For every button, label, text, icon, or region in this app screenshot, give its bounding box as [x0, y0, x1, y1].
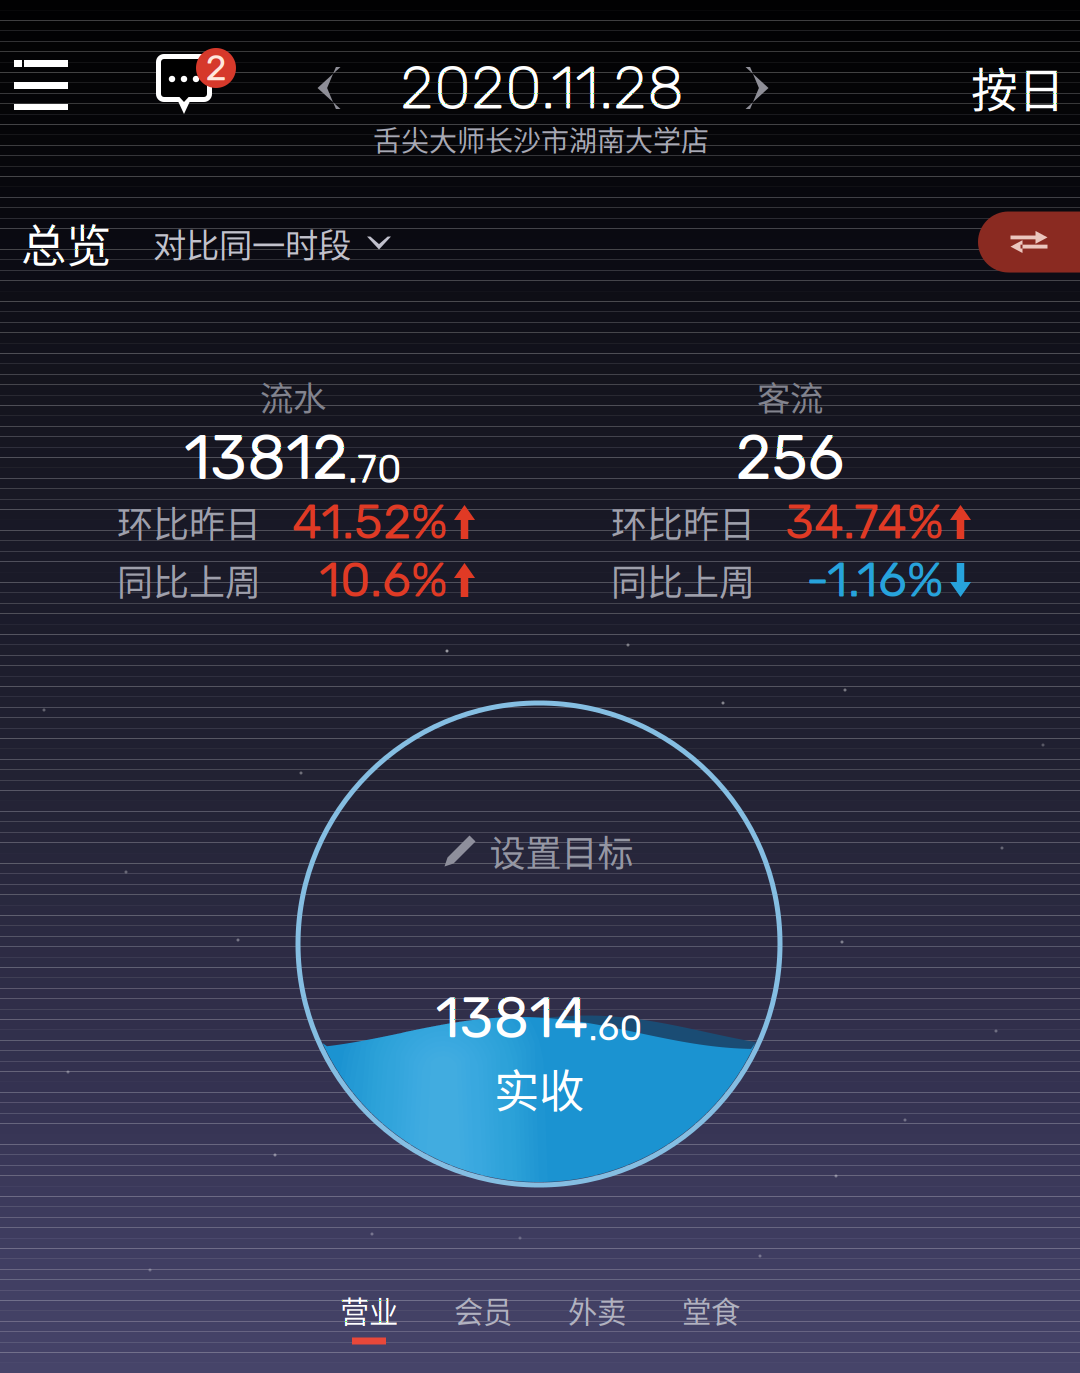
staticText: 同比上周 [117, 554, 261, 606]
button[interactable]: Previous day [303, 53, 354, 123]
staticText: 舌尖大师长沙市湖南大学店 [373, 119, 709, 159]
button[interactable]: Menu [0, 38, 90, 132]
button[interactable]: 堂食 [655, 1260, 767, 1354]
staticText: 2020.11.28 [400, 52, 684, 124]
staticText: 流水 [260, 372, 326, 420]
staticText: -1.16% [806, 552, 944, 608]
staticText: 环比昨日 [611, 496, 755, 548]
button[interactable]: Switch comparison [978, 211, 1080, 272]
staticText: .70 [348, 446, 402, 492]
staticText: 环比昨日 [117, 496, 261, 548]
staticText: 堂食 [682, 1289, 740, 1331]
button[interactable]: Messages [148, 44, 252, 140]
staticText: 外卖 [568, 1289, 626, 1331]
button[interactable]: 按日 [957, 39, 1079, 135]
staticText: 2 [205, 47, 226, 89]
staticText: 13812 [184, 422, 348, 494]
staticText: 总览 [21, 210, 111, 276]
staticText: 实收 [494, 1055, 584, 1121]
button[interactable]: Next day [731, 53, 782, 123]
staticText: 对比同一时段 [153, 219, 351, 267]
staticText: 营业 [340, 1289, 398, 1331]
staticText: 同比上周 [611, 554, 755, 606]
staticText: .60 [588, 1007, 642, 1049]
staticText: 客流 [757, 372, 823, 420]
button[interactable]: 营业 [313, 1260, 425, 1354]
staticText: 10.6% [319, 552, 448, 608]
staticText: 34.74% [785, 494, 944, 550]
staticText: 41.52% [292, 494, 448, 550]
button[interactable]: 对比同一时段 [143, 209, 401, 277]
staticText: 设置目标 [489, 825, 633, 877]
button[interactable]: 会员 [427, 1260, 539, 1354]
staticText: 按日 [971, 53, 1065, 121]
button[interactable]: 外卖 [541, 1260, 653, 1354]
staticText: 256 [735, 422, 844, 494]
staticText: 会员 [454, 1289, 512, 1331]
staticText: 13814 [435, 985, 588, 1051]
button[interactable]: 设置目标 [436, 817, 641, 885]
